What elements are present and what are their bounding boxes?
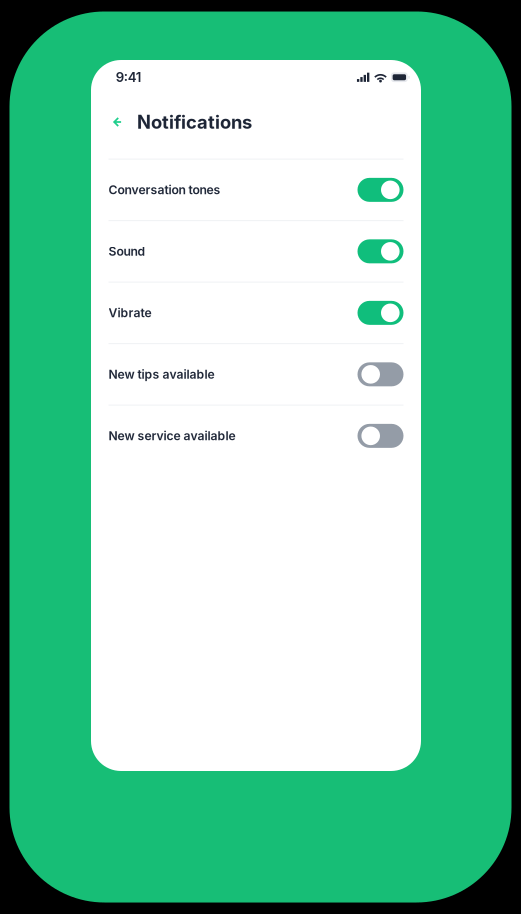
staticText: New service available (108, 428, 235, 443)
button[interactable]: Back (113, 109, 137, 135)
staticText: Conversation tones (108, 182, 220, 197)
button[interactable]: New service available (108, 405, 403, 466)
staticText: 9:41 (116, 69, 142, 85)
staticText: Vibrate (108, 305, 151, 320)
staticText: New tips available (108, 367, 214, 382)
staticText: Sound (108, 244, 145, 259)
button[interactable]: Vibrate (108, 282, 403, 343)
button[interactable]: Conversation tones (108, 159, 403, 220)
button[interactable]: New tips available (108, 343, 403, 405)
button[interactable]: Sound (108, 220, 403, 282)
staticText: Notifications (137, 111, 252, 133)
